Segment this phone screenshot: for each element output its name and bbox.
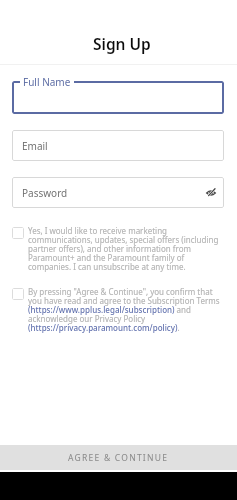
staticText: Yes, I would like to receive marketing c… [28,227,219,272]
button[interactable]: Checkbox [12,227,24,239]
staticText: Password [22,186,68,200]
staticText: By pressing "Agree & Continue", you conf… [28,288,220,333]
staticText: Sign Up [93,33,151,54]
staticText: Email [22,139,48,153]
button[interactable]: Checkbox [12,288,220,333]
button[interactable]: Email [12,130,224,161]
staticText: AGREE & CONTINUE [68,452,169,464]
staticText: Full Name [23,75,71,89]
button[interactable]: Checkbox [12,288,24,300]
button[interactable]: AGREE & CONTINUE [0,445,237,470]
button[interactable]: Show password [203,185,219,201]
button[interactable]: Checkbox [12,227,219,272]
button[interactable] [12,81,224,114]
button[interactable]: Password [12,177,224,208]
